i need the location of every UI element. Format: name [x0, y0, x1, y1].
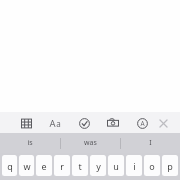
- button[interactable]: I: [121, 133, 180, 153]
- button[interactable]: i: [126, 155, 142, 176]
- button[interactable]: Close keyboard: [154, 114, 172, 132]
- button[interactable]: u: [108, 155, 124, 176]
- staticText: o: [149, 160, 155, 172]
- button[interactable]: is: [0, 133, 60, 153]
- button[interactable]: was: [61, 133, 120, 153]
- staticText: r: [60, 160, 64, 172]
- button[interactable]: r: [54, 155, 70, 176]
- staticText: t: [78, 160, 82, 172]
- staticText: p: [167, 160, 173, 172]
- button[interactable]: Markup: [133, 114, 151, 132]
- staticText: q: [7, 160, 13, 172]
- staticText: i: [133, 160, 136, 172]
- staticText: w: [23, 160, 31, 172]
- staticText: is: [27, 138, 33, 148]
- button[interactable]: Insert table: [17, 114, 35, 132]
- button[interactable]: Text formatting: [46, 114, 64, 132]
- button[interactable]: y: [90, 155, 106, 176]
- staticText: e: [41, 160, 47, 172]
- button[interactable]: Take photo: [104, 114, 122, 132]
- button[interactable]: p: [162, 155, 178, 176]
- staticText: A: [140, 119, 145, 128]
- staticText: A: [49, 117, 56, 129]
- staticText: u: [113, 160, 119, 172]
- button[interactable]: t: [72, 155, 88, 176]
- staticText: a: [56, 118, 61, 129]
- button[interactable]: Checklist: [75, 114, 93, 132]
- button[interactable]: w: [19, 155, 34, 176]
- staticText: was: [84, 138, 97, 148]
- button[interactable]: o: [144, 155, 160, 176]
- staticText: y: [96, 160, 101, 172]
- button[interactable]: e: [36, 155, 52, 176]
- button[interactable]: q: [2, 155, 17, 176]
- staticText: I: [149, 138, 152, 148]
